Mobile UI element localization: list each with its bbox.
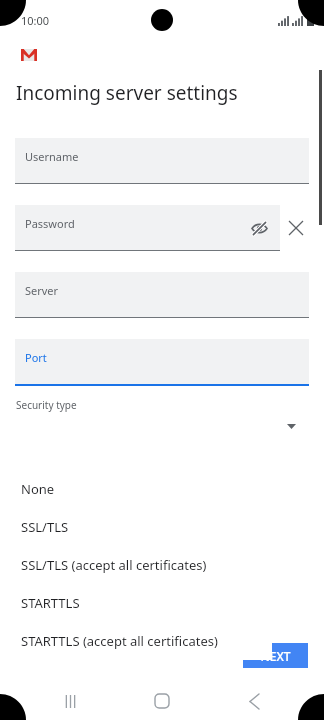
button[interactable]: Home bbox=[140, 682, 184, 720]
button[interactable]: SSL/TLS (accept all certificates) bbox=[11, 546, 272, 584]
staticText: STARTTLS bbox=[21, 594, 80, 612]
button[interactable]: Username bbox=[15, 138, 309, 184]
staticText: 10:00 bbox=[21, 13, 50, 28]
staticText: Username bbox=[25, 149, 79, 164]
button[interactable]: None bbox=[11, 470, 272, 508]
button[interactable]: NEXT bbox=[243, 643, 308, 668]
button[interactable]: Port bbox=[15, 339, 309, 386]
button[interactable]: Server bbox=[15, 272, 309, 318]
button[interactable]: Password bbox=[15, 205, 280, 251]
button[interactable]: Back bbox=[232, 682, 276, 720]
staticText: Incoming server settings bbox=[16, 80, 238, 106]
button[interactable]: STARTTLS bbox=[11, 584, 272, 622]
staticText: SSL/TLS bbox=[21, 518, 69, 536]
staticText: NEXT bbox=[260, 648, 291, 664]
staticText: Security type bbox=[16, 398, 77, 412]
button[interactable]: STARTTLS (accept all certificates) bbox=[11, 622, 272, 660]
staticText: SSL/TLS (accept all certificates) bbox=[21, 556, 207, 574]
button[interactable]: SSL/TLS bbox=[11, 508, 272, 546]
button[interactable]: Security type dropdown bbox=[283, 418, 299, 434]
button[interactable]: Show password bbox=[246, 215, 272, 241]
staticText: None bbox=[21, 480, 55, 498]
button[interactable]: Recents bbox=[48, 682, 92, 720]
staticText: Password bbox=[25, 216, 75, 231]
staticText: Server bbox=[25, 283, 59, 298]
staticText: STARTTLS (accept all certificates) bbox=[21, 632, 218, 650]
staticText: Port bbox=[25, 350, 47, 365]
button[interactable]: Clear bbox=[283, 215, 309, 241]
